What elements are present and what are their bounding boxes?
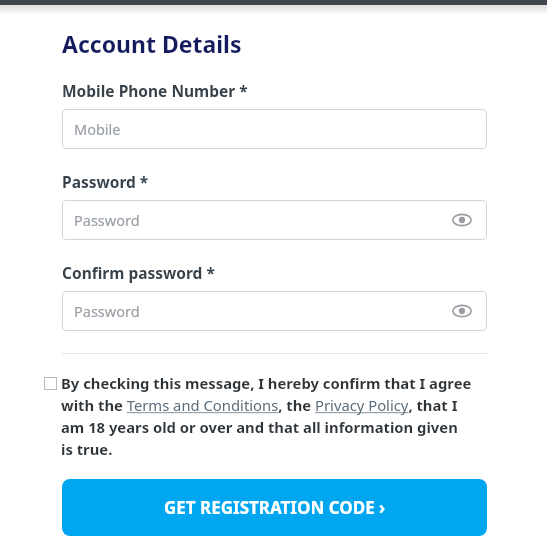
button[interactable]: Mobile <box>62 109 487 149</box>
button[interactable]: Password <box>62 291 487 331</box>
button[interactable]: Show password <box>449 207 475 233</box>
staticText: Password <box>74 210 449 230</box>
staticText: Password * <box>62 171 149 192</box>
button[interactable]: Password <box>62 200 487 240</box>
other: Agree to terms checkbox <box>44 377 57 390</box>
staticText: Mobile Phone Number * <box>62 80 248 101</box>
staticText: By checking this message, I hereby confi… <box>61 373 473 460</box>
staticText: GET REGISTRATION CODE › <box>164 496 386 519</box>
staticText: Confirm password * <box>62 262 215 283</box>
button[interactable]: Agree to terms checkbox <box>62 373 487 460</box>
staticText: Password <box>74 301 449 321</box>
button[interactable]: Show password <box>449 298 475 324</box>
staticText: Mobile <box>74 119 475 139</box>
button[interactable]: GET REGISTRATION CODE › <box>62 479 487 536</box>
staticText: Account Details <box>62 28 242 59</box>
